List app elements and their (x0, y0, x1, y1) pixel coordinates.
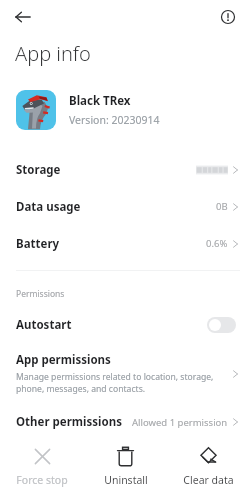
staticText: Black TRex (69, 93, 131, 109)
button[interactable]: Clear data (167, 438, 250, 487)
button[interactable]: Other permissions (0, 411, 250, 433)
staticText: 0.6% (206, 237, 228, 250)
staticText: Uninstall (104, 473, 148, 487)
staticText: Version: 20230914 (69, 113, 160, 127)
staticText: Autostart (16, 317, 207, 333)
staticText: Other permissions (16, 414, 132, 430)
button[interactable]: Force stop (0, 438, 84, 487)
button[interactable]: Autostart (0, 313, 250, 337)
staticText: Battery (16, 236, 206, 252)
staticText: Data usage (16, 199, 216, 215)
staticText: Clear data (183, 473, 234, 487)
button[interactable]: Uninstall (84, 438, 167, 487)
button[interactable]: App details (216, 5, 240, 29)
staticText: App info (15, 40, 91, 67)
staticText: Manage permissions related to location, … (16, 371, 214, 395)
staticText: Force stop (16, 473, 68, 487)
staticText: Permissions (16, 288, 65, 300)
button[interactable]: Autostart toggle, off (207, 317, 236, 333)
staticText: Storage (16, 162, 196, 178)
button[interactable]: Storage (0, 151, 250, 188)
staticText: App permissions (16, 352, 111, 368)
staticText: 0B (216, 200, 228, 213)
button[interactable]: Battery (0, 225, 250, 262)
button[interactable]: Data usage (0, 188, 250, 225)
button[interactable]: App permissions (0, 352, 250, 395)
staticText: Allowed 1 permission (132, 416, 228, 429)
button[interactable]: Back (10, 4, 36, 30)
